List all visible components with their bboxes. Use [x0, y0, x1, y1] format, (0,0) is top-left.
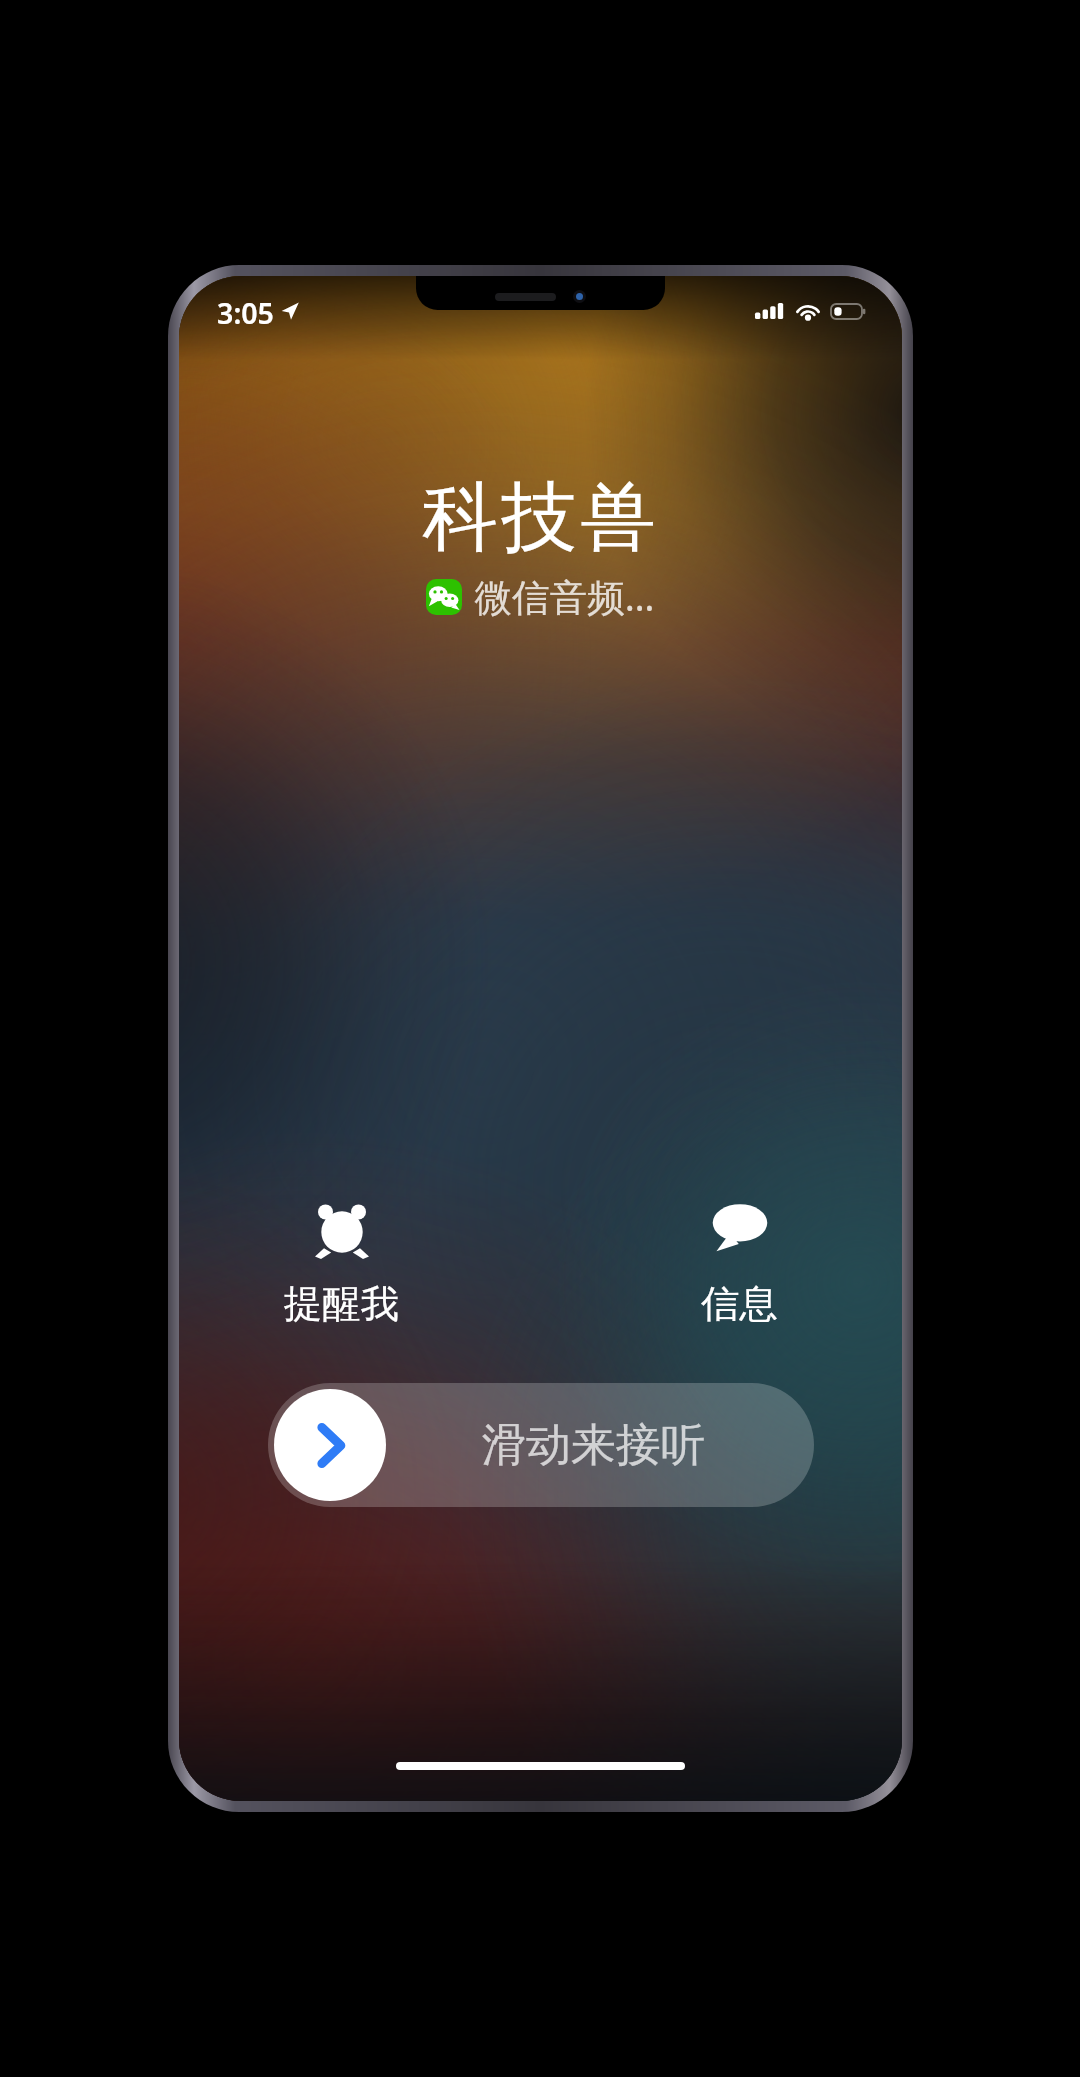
staticText: 微信音频… [474, 571, 655, 622]
button[interactable]: Remind Me [233, 1185, 450, 1337]
staticText: 信息 [701, 1280, 778, 1328]
button[interactable]: Message [631, 1185, 848, 1337]
button[interactable]: Slide to answer [268, 1383, 814, 1507]
staticText: 提醒我 [284, 1280, 399, 1328]
staticText: 滑动来接听 [481, 1417, 706, 1473]
staticText: 3:05 [217, 293, 274, 329]
staticText: 科技兽 [422, 470, 659, 566]
